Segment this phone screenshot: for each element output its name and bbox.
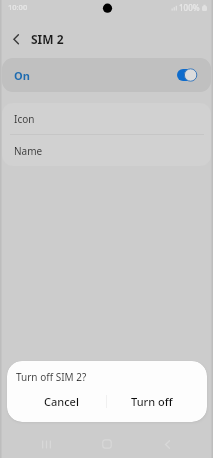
staticText: Name bbox=[14, 144, 43, 158]
staticText: 10:00 bbox=[8, 2, 28, 12]
staticText: Turn off bbox=[131, 394, 173, 409]
button[interactable]: Turn off bbox=[107, 389, 197, 413]
staticText: 100% bbox=[179, 2, 200, 13]
button[interactable]: Cancel bbox=[17, 389, 106, 413]
button[interactable]: Icon bbox=[2, 103, 211, 134]
staticText: Icon bbox=[14, 112, 35, 126]
button[interactable]: On bbox=[2, 58, 211, 92]
staticText: On bbox=[14, 68, 30, 83]
staticText: Turn off SIM 2? bbox=[16, 370, 87, 384]
button[interactable]: Name bbox=[2, 135, 211, 166]
staticText: SIM 2 bbox=[31, 31, 64, 47]
staticText: Cancel bbox=[44, 394, 79, 409]
button[interactable]: Back bbox=[0, 19, 31, 58]
